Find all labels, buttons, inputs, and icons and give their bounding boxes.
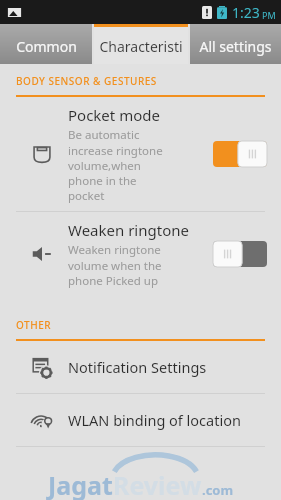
staticText: Be automatic increase ringtone volume,wh… (68, 127, 163, 203)
button[interactable]: Weaken ringtone off (213, 241, 267, 267)
staticText: PM (262, 9, 276, 21)
button[interactable]: Common (0, 24, 92, 64)
staticText: Jagat (48, 468, 113, 500)
staticText: Common (16, 37, 77, 56)
staticText: 1:23 (232, 3, 260, 22)
staticText: Weaken ringtone volume when the phone Pi… (68, 242, 162, 288)
staticText: OTHER (16, 318, 52, 332)
staticText: WLAN binding of location (68, 410, 241, 430)
staticText: Characteristic (99, 37, 183, 56)
staticText: .com (202, 481, 234, 499)
button[interactable]: Characteristic (94, 24, 188, 64)
button[interactable]: Weaken ringtone (0, 212, 281, 296)
staticText: All settings (199, 37, 272, 56)
button[interactable]: All settings (190, 24, 281, 64)
button[interactable]: Notification Settings (0, 341, 281, 393)
button[interactable]: Pocket mode (0, 97, 281, 211)
button[interactable]: Pocket mode on (213, 141, 267, 167)
staticText: Weaken ringtone (68, 220, 189, 240)
staticText: Review (113, 468, 202, 500)
staticText: Notification Settings (68, 357, 207, 377)
staticText: Pocket mode (68, 105, 160, 125)
staticText: BODY SENSOR & GESTURES (16, 74, 157, 88)
button[interactable]: WLAN binding of location (0, 394, 281, 446)
